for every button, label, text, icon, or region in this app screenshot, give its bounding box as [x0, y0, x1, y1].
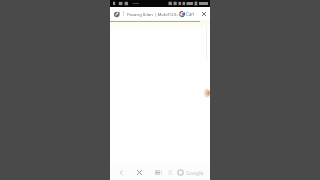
staticText: Google	[186, 169, 204, 176]
staticText: Cari	[186, 11, 195, 17]
button[interactable]: Close	[134, 167, 144, 177]
staticText: Pasang Iklan | Mobil123.co.id	[127, 11, 178, 17]
button[interactable]: Clipboard	[176, 168, 185, 177]
button[interactable]: Voice input	[166, 168, 174, 176]
button[interactable]: Site icon	[113, 10, 120, 17]
button[interactable]: Google search	[178, 10, 185, 17]
button[interactable]: Close tab	[200, 10, 208, 18]
button[interactable]: Text formatting	[154, 167, 163, 177]
button[interactable]: Back	[116, 167, 126, 177]
